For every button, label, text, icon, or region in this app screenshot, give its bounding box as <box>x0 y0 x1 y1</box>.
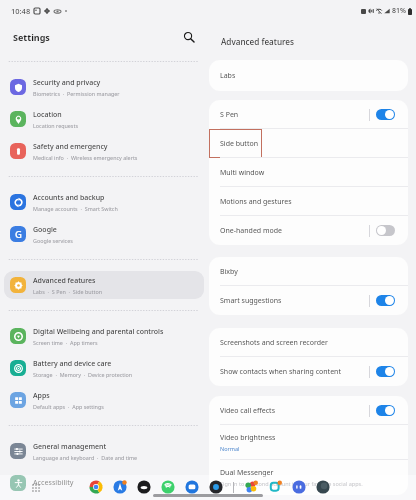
button[interactable]: Apps <box>4 386 204 414</box>
staticText: Bixby <box>220 267 238 277</box>
button[interactable]: Toggle on <box>376 366 395 377</box>
staticText: Apps <box>33 391 50 401</box>
staticText: Advanced features <box>221 36 295 47</box>
staticText: Battery and device care <box>33 359 112 369</box>
button[interactable]: Toggle on <box>376 405 395 416</box>
button[interactable]: Toggle on <box>376 295 395 306</box>
staticText: One-handed mode <box>220 226 282 236</box>
staticText: Dual Messenger <box>220 468 274 478</box>
staticText: Settings <box>13 31 50 43</box>
staticText: Normal <box>220 445 240 452</box>
button[interactable]: chrome <box>89 480 103 494</box>
staticText: Accounts and backup <box>33 193 105 203</box>
button[interactable]: Screenshots and screen recorder <box>209 328 408 357</box>
button[interactable]: One-handed mode <box>209 216 408 245</box>
staticText: Google services <box>33 237 73 244</box>
staticText: Security and privacy <box>33 78 101 88</box>
staticText: Multi window <box>220 168 265 178</box>
button[interactable]: Bixby <box>209 257 408 286</box>
staticText: 10:48 <box>11 6 31 16</box>
button[interactable]: Accessibility <box>4 469 204 497</box>
button[interactable]: teal <box>268 480 282 494</box>
staticText: Smart suggestions <box>220 296 282 306</box>
staticText: Digital Wellbeing and parental controls <box>33 327 164 337</box>
button[interactable]: Toggle off <box>376 225 395 236</box>
staticText: Screenshots and screen recorder <box>220 338 328 348</box>
staticText: Manage accounts · Smart Switch <box>33 205 118 212</box>
button[interactable]: Side button <box>209 129 408 158</box>
staticText: Show contacts when sharing content <box>220 367 341 377</box>
button[interactable]: Accounts and backup <box>4 188 204 216</box>
button[interactable]: Video call effects <box>209 396 408 425</box>
button[interactable]: Dual Messenger <box>209 460 408 495</box>
button[interactable]: ai <box>292 480 306 494</box>
staticText: Labs · S Pen · Side button <box>33 288 103 295</box>
button[interactable]: Advanced features <box>4 271 204 299</box>
staticText: Video call effects <box>220 406 275 416</box>
button[interactable]: Apps list <box>29 481 42 494</box>
button[interactable]: Search <box>180 28 198 46</box>
button[interactable]: Video brightness <box>209 425 408 460</box>
button[interactable]: Motions and gestures <box>209 187 408 216</box>
staticText: Google <box>33 225 57 235</box>
staticText: Advanced features <box>33 276 96 286</box>
staticText: Side button <box>220 139 258 149</box>
button[interactable]: Digital Wellbeing and parental controls <box>4 322 204 350</box>
button[interactable]: Labs <box>209 60 408 91</box>
button[interactable]: messages <box>185 480 199 494</box>
staticText: Location requests <box>33 122 78 129</box>
button[interactable]: slack <box>244 480 258 494</box>
button[interactable]: Battery and device care <box>4 354 204 382</box>
staticText: Video brightness <box>220 433 276 443</box>
button[interactable]: Smart suggestions <box>209 286 408 315</box>
staticText: Sign in to a second account in your favo… <box>220 480 363 487</box>
button[interactable]: darkBlue <box>209 480 223 494</box>
staticText: Motions and gestures <box>220 197 292 207</box>
button[interactable]: S Pen <box>209 100 408 129</box>
staticText: General management <box>33 442 107 452</box>
button[interactable]: darkMail <box>137 480 151 494</box>
staticText: Storage · Memory · Device protection <box>33 371 133 378</box>
staticText: Accessibility <box>33 478 74 488</box>
button[interactable]: darkTeal <box>316 480 330 494</box>
staticText: G <box>15 228 22 241</box>
staticText: 81% <box>392 6 406 16</box>
button[interactable]: General management <box>4 437 204 465</box>
button[interactable]: Toggle on <box>376 109 395 120</box>
button[interactable]: Safety and emergency <box>4 137 204 165</box>
button[interactable]: Security and privacy <box>4 73 204 101</box>
button[interactable]: blueNav <box>113 480 127 494</box>
button[interactable]: Multi window <box>209 158 408 187</box>
staticText: Language and keyboard · Date and time <box>33 454 138 461</box>
staticText: Default apps · App settings <box>33 403 104 410</box>
button[interactable]: Location <box>4 105 204 133</box>
button[interactable]: Show contacts when sharing content <box>209 357 408 386</box>
staticText: Biometrics · Permission manager <box>33 90 120 97</box>
staticText: Labs <box>220 71 236 81</box>
staticText: Location <box>33 110 62 120</box>
button[interactable]: spotify <box>161 480 175 494</box>
staticText: Medical info · Wireless emergency alerts <box>33 154 138 161</box>
staticText: S Pen <box>220 110 239 120</box>
button[interactable]: G <box>4 220 204 248</box>
staticText: Screen time · App timers <box>33 339 98 346</box>
staticText: Safety and emergency <box>33 142 108 152</box>
